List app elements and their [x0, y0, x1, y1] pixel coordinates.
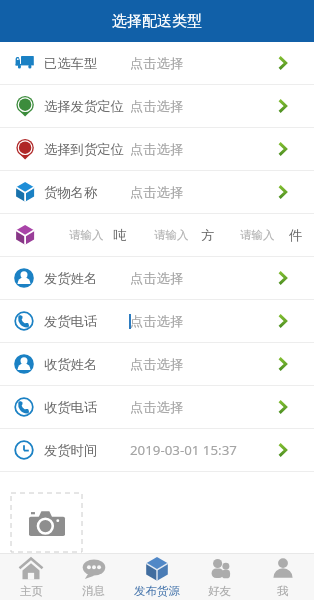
button[interactable]: 货物名称 [0, 171, 314, 213]
staticText: 点击选择 [130, 313, 184, 330]
staticText: 请输入 [240, 228, 275, 242]
button[interactable]: 我 [251, 554, 314, 600]
button[interactable]: 收货电话 [0, 386, 314, 428]
staticText: 点击选择 [130, 98, 184, 115]
staticText: 发布货源 [134, 584, 180, 598]
staticText: 消息 [82, 584, 105, 598]
staticText: 点击选择 [130, 356, 184, 373]
button[interactable]: 请输入 [69, 228, 104, 242]
button[interactable]: 好友 [188, 554, 251, 600]
staticText: 发货电话 [44, 313, 98, 330]
button[interactable]: 发货姓名 [0, 257, 314, 299]
button[interactable]: 消息 [62, 554, 125, 600]
button[interactable]: 已选车型 [0, 42, 314, 84]
staticText: 请输入 [69, 228, 104, 242]
staticText: 点击选择 [130, 270, 184, 287]
staticText: 2019-03-01 15:37 [130, 441, 237, 459]
button[interactable]: 发布货源 [125, 554, 188, 600]
staticText: 主页 [20, 584, 43, 598]
staticText: 已选车型 [44, 55, 98, 72]
button[interactable]: 选择到货定位 [0, 128, 314, 170]
staticText: 收货电话 [44, 399, 98, 416]
button[interactable]: 请输入 [154, 228, 189, 242]
button[interactable]: 选择发货定位 [0, 85, 314, 127]
staticText: 发货时间 [44, 442, 98, 459]
button[interactable]: Add photo [11, 493, 82, 552]
button[interactable]: 发货电话 [0, 300, 314, 342]
staticText: 点击选择 [130, 184, 184, 201]
button[interactable]: 主页 [0, 554, 62, 600]
staticText: 方 [201, 227, 215, 244]
staticText: 点击选择 [130, 141, 184, 158]
staticText: 收货姓名 [44, 356, 98, 373]
staticText: 选择到货定位 [44, 141, 124, 158]
staticText: 点击选择 [130, 399, 184, 416]
staticText: 发货姓名 [44, 270, 98, 287]
staticText: 货物名称 [44, 184, 98, 201]
staticText: 我 [277, 584, 289, 598]
staticText: 好友 [208, 584, 231, 598]
staticText: 点击选择 [130, 55, 184, 72]
button[interactable]: 请输入 [240, 228, 275, 242]
staticText: 件 [289, 227, 303, 244]
staticText: 选择发货定位 [44, 98, 124, 115]
button[interactable]: 发货时间 [0, 429, 314, 471]
staticText: 吨 [113, 227, 127, 244]
staticText: 选择配送类型 [112, 12, 202, 31]
button[interactable]: 收货姓名 [0, 343, 314, 385]
staticText: 请输入 [154, 228, 189, 242]
